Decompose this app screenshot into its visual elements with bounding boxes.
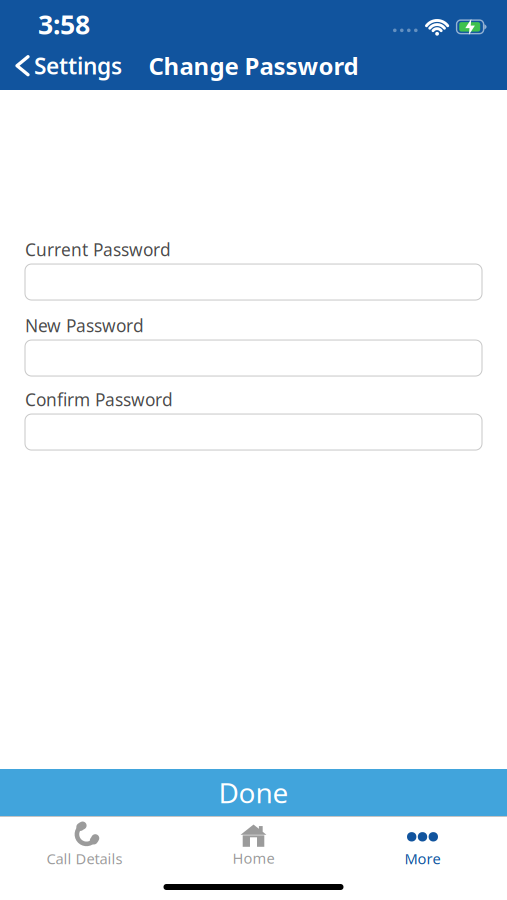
staticText: New Password (25, 314, 144, 337)
staticText: Current Password (25, 238, 171, 261)
button[interactable]: Back to Settings (0, 51, 122, 81)
button[interactable]: Done (0, 769, 507, 816)
button[interactable]: More (338, 824, 507, 869)
staticText: 3:58 (38, 6, 90, 42)
button[interactable]: New Password (25, 340, 482, 376)
button[interactable]: Current Password (25, 264, 482, 300)
button[interactable]: Confirm Password (25, 414, 482, 450)
button[interactable]: Home (169, 824, 338, 869)
staticText: Confirm Password (25, 388, 173, 411)
button[interactable]: Call Details (0, 824, 169, 869)
staticText: Call Details (46, 849, 122, 868)
staticText: Done (218, 774, 288, 811)
staticText: Change Password (148, 50, 358, 82)
staticText: More (404, 849, 440, 868)
staticText: Settings (34, 51, 122, 81)
staticText: Home (232, 848, 274, 868)
